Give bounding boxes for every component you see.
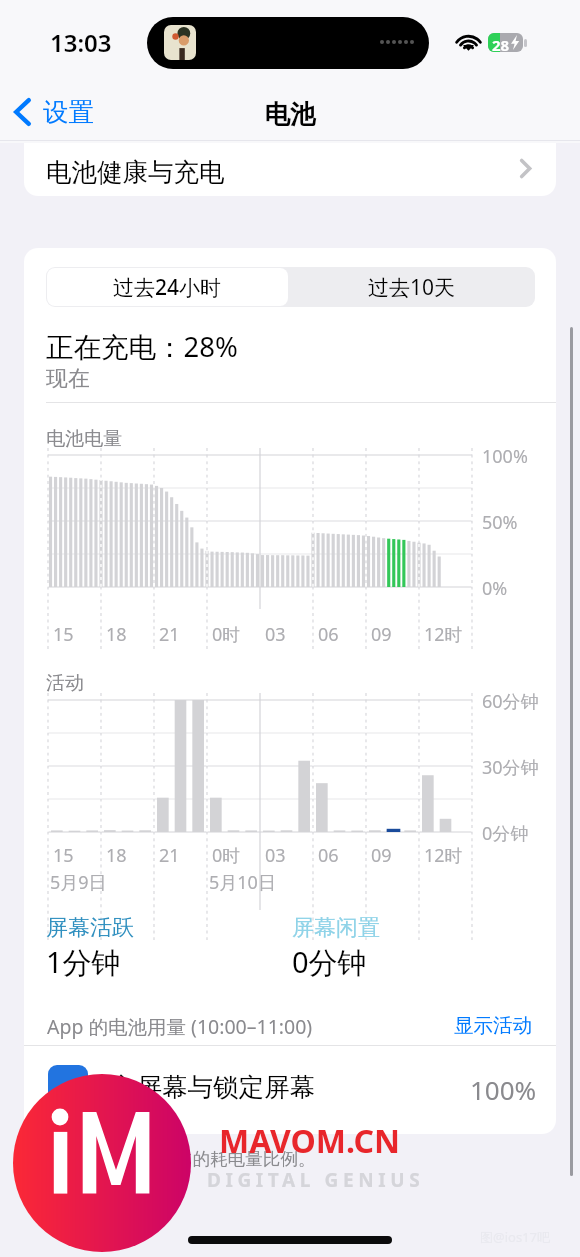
staticText: 屏幕闲置 bbox=[292, 914, 380, 942]
staticText: 显示每个 App 所占的耗电量比例。 bbox=[46, 1146, 316, 1170]
staticText: 显示活动 bbox=[454, 1013, 532, 1038]
staticText: 100% bbox=[482, 444, 528, 469]
staticText: 过去24小时 bbox=[113, 273, 222, 302]
staticText: 活动 bbox=[46, 671, 84, 695]
staticText: 电池健康与充电 bbox=[46, 156, 225, 188]
staticText: 电池 bbox=[0, 98, 580, 130]
staticText: 03 bbox=[265, 843, 286, 868]
other: Wi-Fi bbox=[457, 34, 480, 51]
staticText: 15 bbox=[53, 622, 74, 647]
button[interactable]: 屏幕闲置 bbox=[292, 914, 380, 982]
staticText: 12时 bbox=[424, 622, 463, 647]
button[interactable]: 显示活动 bbox=[444, 1010, 542, 1041]
staticText: 电池电量 bbox=[46, 427, 122, 451]
staticText: MAVOM.CN bbox=[219, 1119, 400, 1163]
staticText: 03 bbox=[265, 622, 286, 647]
button[interactable]: 过去24小时 bbox=[47, 268, 288, 306]
staticText: 30分钟 bbox=[482, 755, 539, 780]
staticText: 50% bbox=[482, 510, 518, 535]
staticText: 60分钟 bbox=[482, 689, 539, 714]
button[interactable]: 屏幕活跃 bbox=[46, 914, 134, 982]
staticText: DIGITAL GENIUS bbox=[207, 1167, 425, 1193]
staticText: 主屏幕与锁定屏幕 bbox=[111, 1071, 315, 1103]
staticText: 现在 bbox=[46, 365, 90, 393]
staticText: App 的电池用量 (10:00–11:00) bbox=[47, 1013, 313, 1040]
staticText: 100% bbox=[470, 1072, 537, 1107]
button[interactable]: 电池健康与充电 bbox=[24, 143, 556, 196]
staticText: 正在充电：28% bbox=[46, 328, 238, 366]
staticText: 0时 bbox=[212, 622, 241, 647]
staticText: 09 bbox=[371, 622, 392, 647]
staticText: 06 bbox=[318, 622, 339, 647]
staticText: 21 bbox=[159, 622, 180, 647]
staticText: 5月9日 bbox=[50, 870, 107, 895]
staticText: 屏幕活跃 bbox=[46, 914, 134, 942]
staticText: 28 bbox=[492, 35, 510, 55]
staticText: 13:03 bbox=[50, 26, 112, 59]
staticText: 0分钟 bbox=[482, 821, 529, 846]
staticText: 21 bbox=[159, 843, 180, 868]
staticText: 15 bbox=[53, 843, 74, 868]
staticText: 18 bbox=[106, 843, 127, 868]
button[interactable]: 主屏幕与锁定屏幕 bbox=[24, 1046, 556, 1134]
staticText: 12时 bbox=[424, 843, 463, 868]
staticText: 0时 bbox=[212, 843, 241, 868]
staticText: 设置 bbox=[43, 96, 94, 128]
staticText: 09 bbox=[371, 843, 392, 868]
button[interactable]: 设置 bbox=[8, 90, 104, 134]
staticText: 图@ios17吧 bbox=[480, 1228, 551, 1246]
staticText: 06 bbox=[318, 843, 339, 868]
staticText: 1分钟 bbox=[46, 942, 121, 982]
staticText: 过去10天 bbox=[368, 273, 456, 302]
staticText: 0分钟 bbox=[292, 942, 367, 982]
button[interactable]: 过去10天 bbox=[289, 267, 535, 307]
staticText: 0% bbox=[482, 576, 508, 601]
staticText: 18 bbox=[106, 622, 127, 647]
staticText: 5月10日 bbox=[209, 870, 276, 895]
